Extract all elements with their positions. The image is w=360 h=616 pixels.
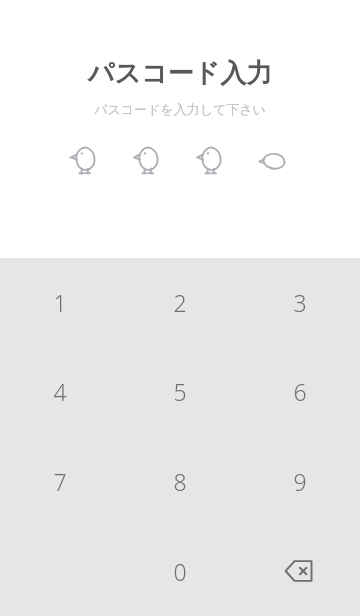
staticText: 0 [173, 556, 187, 587]
button[interactable]: 6 [240, 347, 360, 436]
button[interactable]: 7 [0, 436, 120, 526]
staticText: 6 [293, 376, 307, 407]
staticText: 5 [173, 376, 187, 407]
staticText: 3 [293, 287, 307, 318]
button[interactable]: 5 [120, 347, 240, 436]
staticText: パスコードを入力して下さい [0, 101, 360, 117]
staticText: 7 [53, 466, 67, 497]
button[interactable]: 3 [240, 258, 360, 347]
staticText: 9 [293, 466, 307, 497]
button[interactable]: 0 [120, 526, 240, 616]
staticText: 8 [173, 466, 187, 497]
button[interactable]: 8 [120, 436, 240, 526]
staticText: 1 [53, 287, 67, 318]
button[interactable]: 2 [120, 258, 240, 347]
button[interactable]: 4 [0, 347, 120, 436]
button[interactable]: Delete [240, 526, 360, 616]
staticText: 4 [53, 376, 67, 407]
button[interactable]: 9 [240, 436, 360, 526]
staticText: 2 [173, 287, 187, 318]
staticText: パスコード入力 [0, 57, 360, 90]
button[interactable]: 1 [0, 258, 120, 347]
